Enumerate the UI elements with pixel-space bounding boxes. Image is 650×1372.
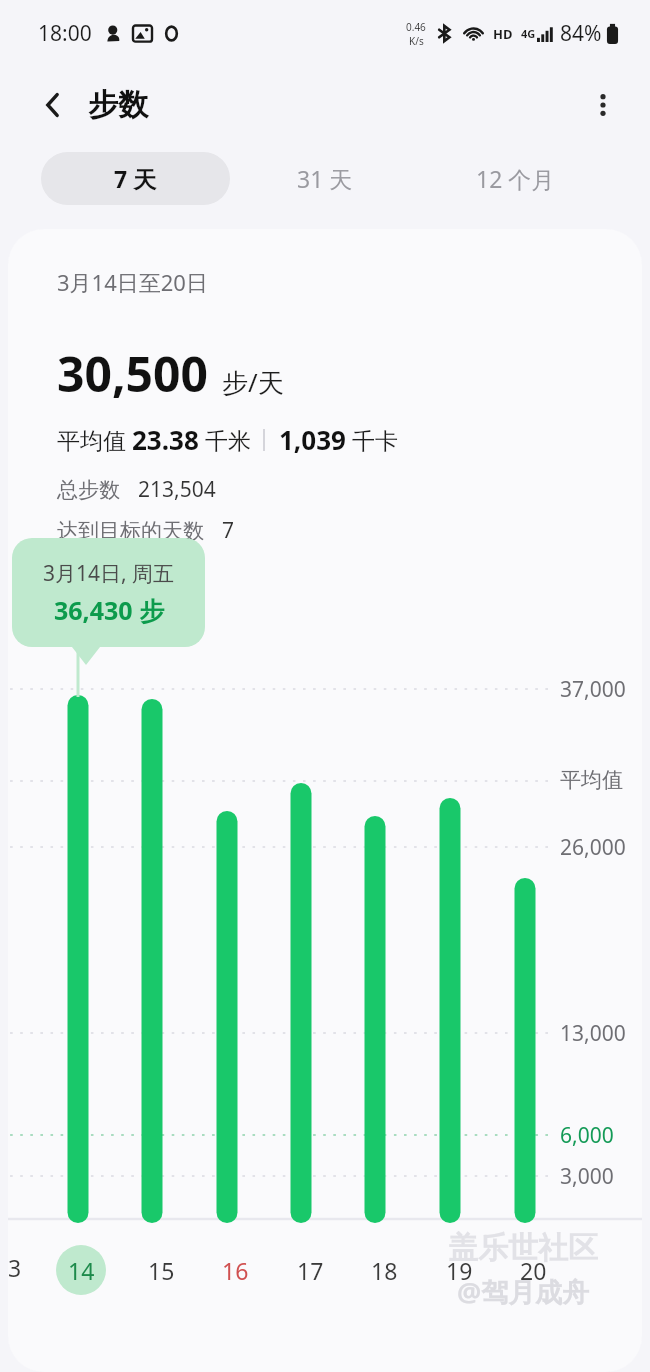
button[interactable]: 20 bbox=[508, 1245, 558, 1295]
staticText: 步数 bbox=[88, 86, 148, 124]
staticText: 20 bbox=[520, 1255, 547, 1286]
staticText: 7 bbox=[222, 516, 235, 545]
button[interactable]: 19 bbox=[434, 1245, 484, 1295]
button[interactable]: 3月14日, 周五 bbox=[12, 538, 205, 647]
staticText: 13,000 bbox=[560, 1019, 626, 1048]
button[interactable]: 12 个月 bbox=[420, 152, 610, 205]
button[interactable]: 15 bbox=[136, 1245, 186, 1295]
staticText: 3月14日至20日 bbox=[57, 267, 208, 297]
staticText: 步/天 bbox=[222, 364, 284, 400]
staticText: 16 bbox=[222, 1255, 249, 1286]
button[interactable]: 16 bbox=[210, 1245, 260, 1295]
staticText: 31 天 bbox=[297, 163, 353, 194]
staticText: 19 bbox=[446, 1255, 473, 1286]
staticText: 213,504 bbox=[138, 475, 216, 504]
staticText: K/s bbox=[409, 34, 424, 48]
button[interactable]: More options bbox=[578, 80, 628, 130]
button[interactable]: 7 天 bbox=[41, 152, 230, 205]
staticText: 3月14日, 周五 bbox=[43, 559, 175, 588]
staticText: 84% bbox=[560, 19, 602, 48]
staticText: 盖乐世社区 bbox=[448, 1229, 598, 1267]
staticText: HD bbox=[493, 25, 513, 43]
staticText: 3,000 bbox=[560, 1162, 614, 1191]
staticText: 平均值 bbox=[560, 767, 623, 793]
staticText: 18:00 bbox=[38, 19, 92, 48]
staticText: @驾月成舟 bbox=[457, 1273, 590, 1310]
staticText: 6,000 bbox=[560, 1121, 614, 1150]
button[interactable]: Back bbox=[30, 82, 76, 128]
staticText: 15 bbox=[148, 1255, 175, 1286]
staticText: 17 bbox=[297, 1255, 324, 1286]
staticText: 千米 bbox=[199, 424, 251, 455]
staticText: 26,000 bbox=[560, 833, 626, 862]
staticText: 23.38 bbox=[132, 422, 199, 457]
button[interactable]: 31 天 bbox=[230, 152, 420, 205]
staticText: 达到目标的天数 bbox=[57, 518, 204, 544]
staticText: 14 bbox=[68, 1255, 95, 1286]
staticText: 18 bbox=[371, 1255, 398, 1286]
button[interactable]: 14 bbox=[56, 1245, 106, 1295]
button[interactable]: 18 bbox=[359, 1245, 409, 1295]
staticText: 总步数 bbox=[57, 477, 120, 503]
staticText: 4G bbox=[521, 26, 536, 41]
staticText: 0.46 bbox=[406, 20, 426, 34]
staticText: 36,430 步 bbox=[54, 593, 165, 627]
staticText: 30,500 bbox=[57, 341, 208, 406]
staticText: 千卡 bbox=[346, 424, 398, 455]
staticText: 7 天 bbox=[114, 163, 157, 194]
staticText: 12 个月 bbox=[476, 163, 555, 194]
staticText: 3 bbox=[8, 1252, 22, 1283]
staticText: 1,039 bbox=[279, 422, 346, 457]
button[interactable]: 17 bbox=[285, 1245, 335, 1295]
staticText: 37,000 bbox=[560, 675, 626, 704]
staticText: 平均值 bbox=[57, 424, 132, 455]
